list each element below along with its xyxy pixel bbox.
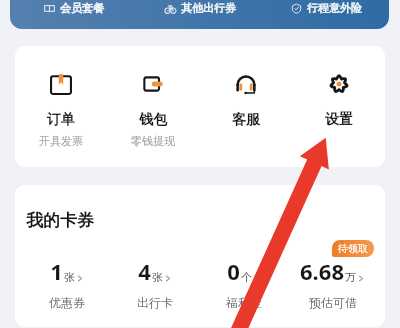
staticText: 张	[152, 270, 163, 284]
button[interactable]: 会员套餐	[10, 0, 137, 29]
staticText: 福利金	[226, 295, 262, 310]
staticText: 我的卡券	[26, 210, 94, 231]
button[interactable]: 其他出行券	[137, 0, 263, 29]
button[interactable]: 客服	[199, 46, 292, 167]
staticText: 出行卡	[137, 295, 173, 310]
button[interactable]: 6.68	[288, 256, 377, 310]
staticText: 行程意外险	[307, 1, 362, 15]
button[interactable]: 0	[199, 256, 288, 310]
staticText: 订单	[47, 111, 75, 129]
staticText: 客服	[232, 111, 260, 129]
button[interactable]: 钱包	[107, 46, 199, 167]
staticText: 开具发票	[39, 134, 83, 148]
button[interactable]: 行程意外险	[263, 0, 389, 29]
staticText: 钱包	[139, 111, 167, 129]
staticText: 优惠券	[49, 295, 85, 310]
staticText: 张	[64, 270, 75, 284]
button[interactable]: 设置	[292, 46, 385, 167]
staticText: 万	[345, 270, 356, 284]
staticText: 1	[50, 256, 63, 286]
staticText: 6.68	[300, 256, 344, 286]
staticText: 4	[138, 256, 151, 286]
button[interactable]: 订单	[15, 46, 107, 167]
staticText: 其他出行券	[181, 1, 236, 15]
staticText: 0	[227, 256, 240, 286]
staticText: 会员套餐	[60, 1, 104, 15]
staticText: 设置	[325, 111, 353, 129]
staticText: 预估可借	[309, 295, 357, 310]
button[interactable]: 4	[111, 256, 199, 310]
staticText: 个	[241, 270, 252, 284]
button[interactable]: 待领取	[332, 240, 374, 257]
staticText: 零钱提现	[131, 134, 175, 148]
staticText: 待领取	[338, 242, 368, 255]
button[interactable]: 1	[23, 256, 111, 310]
